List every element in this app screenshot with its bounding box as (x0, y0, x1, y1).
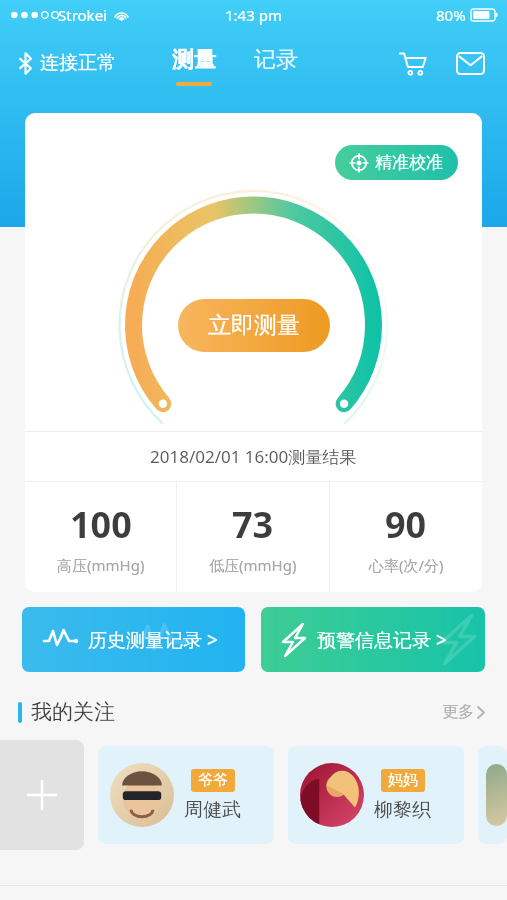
staticText: 测量 (172, 46, 216, 74)
staticText: 2018/02/01 16:00测量结果 (150, 445, 357, 468)
staticText: 80% (436, 5, 466, 25)
button[interactable]: Messages (452, 45, 488, 81)
staticText: 历史测量记录 > (88, 627, 218, 653)
button[interactable]: 精准校准 (335, 145, 458, 180)
staticText: 高压(mmHg) (57, 555, 145, 575)
staticText: 90 (385, 500, 427, 549)
staticText: 柳黎织 (374, 798, 431, 822)
button[interactable]: 历史测量记录 > (22, 607, 245, 672)
staticText: 连接正常 (40, 51, 116, 75)
button[interactable]: 100 (25, 482, 176, 592)
button[interactable]: 记录 (249, 46, 303, 74)
staticText: 1:43 pm (225, 5, 282, 25)
staticText: 低压(mmHg) (209, 555, 297, 575)
button[interactable]: 妈妈 (288, 746, 464, 844)
button[interactable]: Shopping cart (394, 45, 430, 81)
staticText: Strokei (58, 5, 107, 25)
button[interactable]: 90 (330, 482, 482, 592)
staticText: 周健武 (184, 798, 241, 822)
button[interactable]: 73 (177, 482, 329, 592)
staticText: 更多 (442, 702, 474, 722)
button[interactable]: 立即测量 (178, 299, 330, 352)
button[interactable]: 更多 (438, 698, 489, 726)
staticText: 心率(次/分) (369, 555, 444, 575)
button[interactable]: 爷爷 (98, 746, 274, 844)
button[interactable]: 预警信息记录 > (261, 607, 485, 672)
staticText: 爷爷 (198, 771, 228, 790)
staticText: 立即测量 (208, 311, 300, 340)
button[interactable]: Add contact (0, 740, 84, 850)
staticText: 记录 (254, 46, 298, 74)
staticText: 妈妈 (388, 771, 418, 790)
staticText: 我的关注 (31, 699, 115, 725)
staticText: 73 (232, 500, 274, 549)
button[interactable]: 测量 (167, 46, 221, 86)
button[interactable]: 连接正常 (19, 51, 116, 75)
staticText: 精准校准 (375, 152, 443, 173)
staticText: 100 (70, 500, 132, 549)
staticText: 预警信息记录 > (317, 627, 447, 653)
button[interactable] (478, 746, 507, 844)
